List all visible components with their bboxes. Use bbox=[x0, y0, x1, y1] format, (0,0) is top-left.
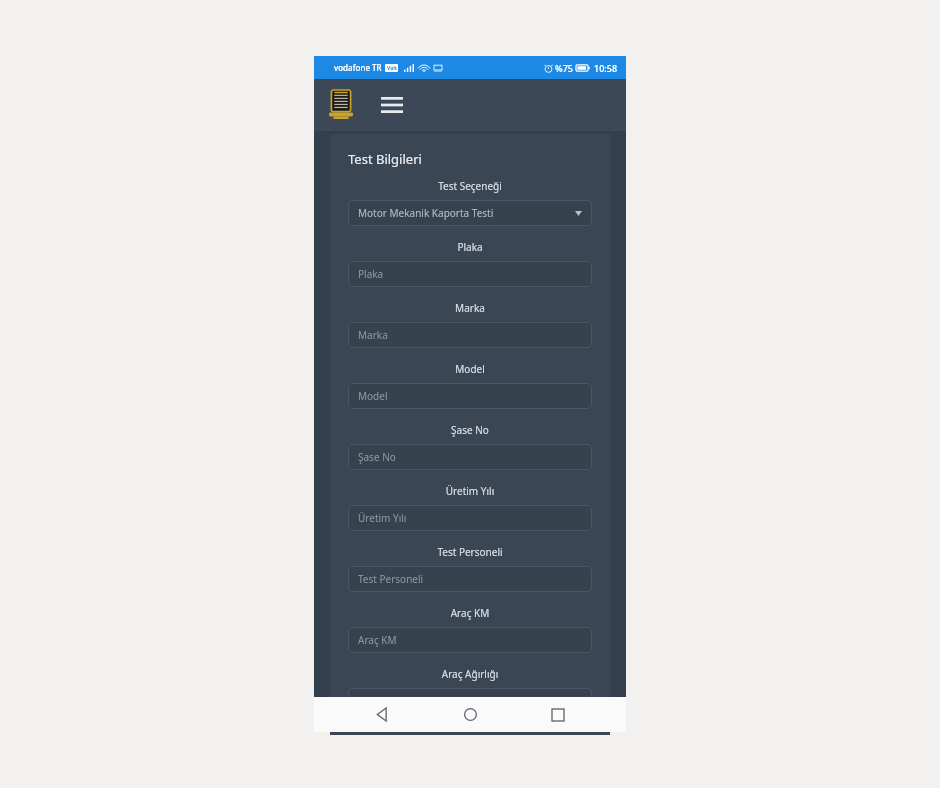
staticText: Marka bbox=[330, 301, 610, 315]
staticText: Üretim Yılı bbox=[330, 484, 610, 498]
button[interactable]: Araç KM bbox=[348, 627, 592, 653]
staticText: Araç KM bbox=[358, 633, 397, 647]
button[interactable]: Marka bbox=[348, 322, 592, 348]
staticText: Araç KM bbox=[330, 606, 610, 620]
staticText: Model bbox=[330, 362, 610, 376]
staticText: Şase No bbox=[358, 450, 396, 464]
staticText: Motor Mekanik Kaporta Testi bbox=[358, 206, 494, 220]
button[interactable]: Logo bbox=[326, 88, 356, 122]
staticText: Şase No bbox=[330, 423, 610, 437]
staticText: Araç Ağırlığı bbox=[358, 694, 415, 708]
button[interactable]: Test Personeli bbox=[348, 566, 592, 592]
staticText: Test Personeli bbox=[358, 572, 424, 586]
button[interactable]: Home bbox=[450, 697, 490, 732]
button[interactable]: Şase No bbox=[348, 444, 592, 470]
staticText: Üretim Yılı bbox=[358, 511, 407, 525]
staticText: Plaka bbox=[330, 240, 610, 254]
staticText: 10:58 bbox=[594, 62, 618, 74]
staticText: Model bbox=[358, 389, 388, 403]
staticText: Test Personeli bbox=[330, 545, 610, 559]
staticText: Plaka bbox=[358, 267, 384, 281]
button[interactable]: Üretim Yılı bbox=[348, 505, 592, 531]
button[interactable]: Motor Mekanik Kaporta Testi bbox=[348, 200, 592, 226]
staticText: Marka bbox=[358, 328, 388, 342]
staticText: %75 bbox=[555, 62, 573, 74]
staticText: Volt bbox=[387, 65, 397, 72]
button[interactable]: Model bbox=[348, 383, 592, 409]
staticText: Test Seçeneği bbox=[330, 179, 610, 193]
button[interactable]: Plaka bbox=[348, 261, 592, 287]
staticText: Araç Ağırlığı bbox=[330, 667, 610, 681]
staticText: Test Bilgileri bbox=[348, 150, 422, 168]
button[interactable]: Araç Ağırlığı bbox=[348, 688, 592, 714]
button[interactable]: Back bbox=[362, 697, 402, 732]
staticText: vodafone TR bbox=[334, 62, 382, 73]
button[interactable]: Recents bbox=[538, 697, 578, 732]
button[interactable]: Menu bbox=[374, 87, 410, 123]
